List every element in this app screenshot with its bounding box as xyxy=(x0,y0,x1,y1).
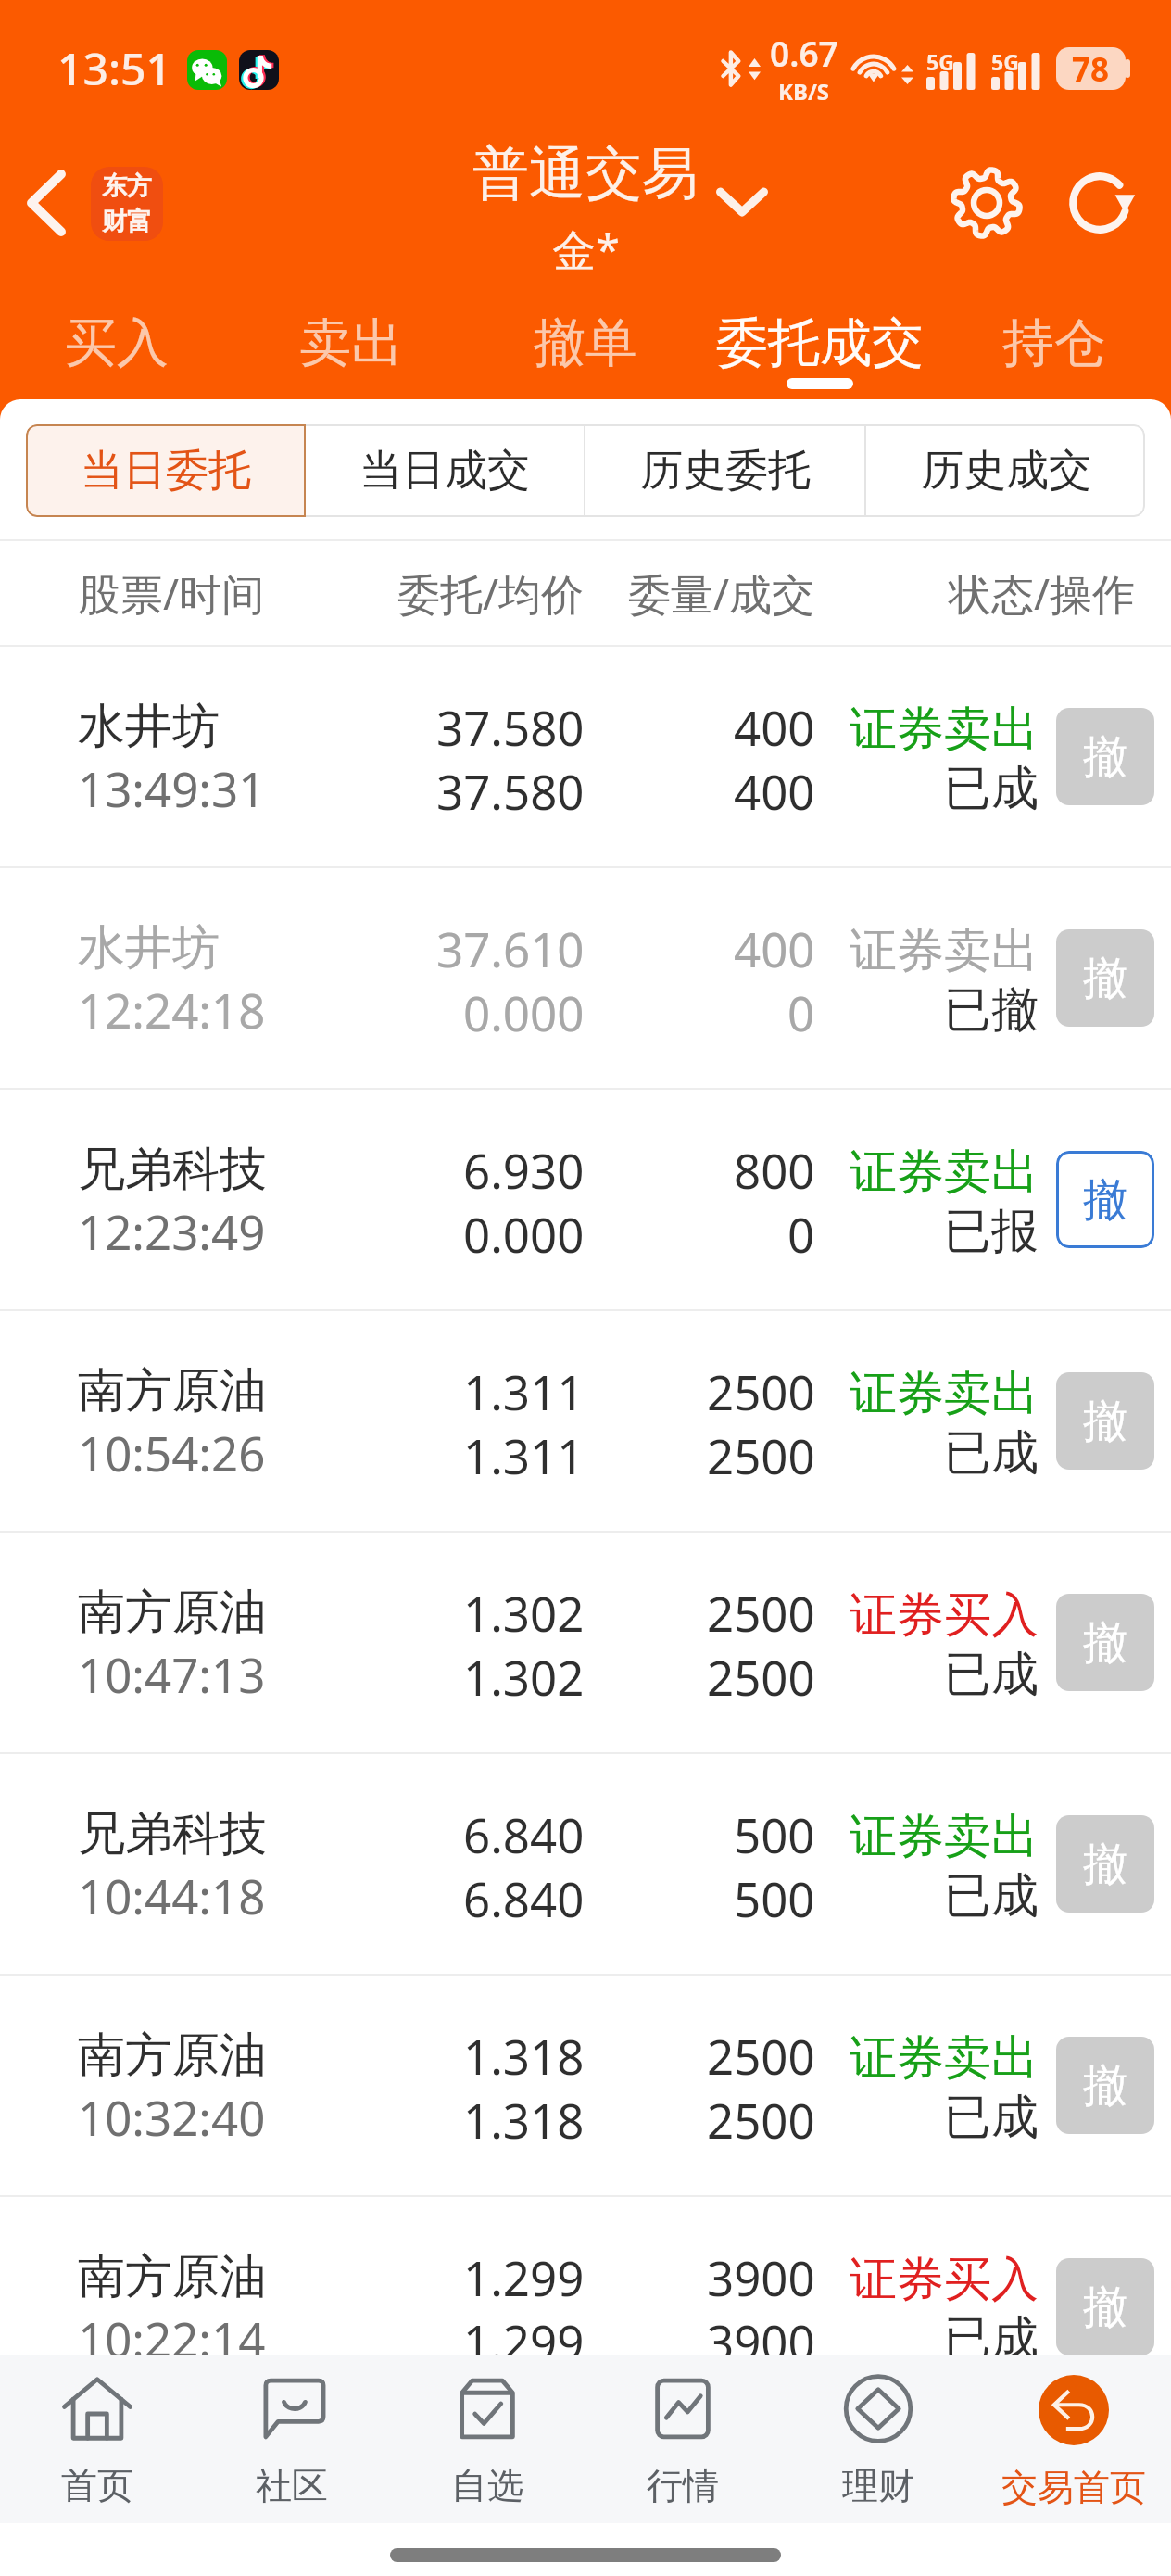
button[interactable]: 兄弟科技 xyxy=(0,1090,1171,1309)
button[interactable]: 历史成交 xyxy=(866,424,1145,517)
button[interactable]: East Money home xyxy=(91,167,163,241)
staticText: 已成 xyxy=(944,759,1039,818)
button[interactable]: 委托成交 xyxy=(702,297,937,399)
staticText: 历史成交 xyxy=(921,444,1091,498)
button[interactable]: 撤 xyxy=(1056,1815,1154,1913)
button[interactable]: 南方原油 xyxy=(0,1976,1171,2195)
staticText: KB/S xyxy=(778,76,830,107)
staticText: 持仓 xyxy=(1002,310,1106,376)
staticText: 证券卖出 xyxy=(850,2028,1039,2088)
staticText: 撤 xyxy=(1083,2058,1127,2114)
staticText: 撤单 xyxy=(534,310,637,376)
staticText: 自选 xyxy=(451,2463,523,2508)
staticText: 5G xyxy=(991,47,1019,76)
staticText: 行情 xyxy=(647,2463,719,2508)
staticText: 10:54:26 xyxy=(78,1421,266,1484)
button[interactable]: 撤 xyxy=(1056,2258,1154,2355)
staticText: 2500 xyxy=(707,1581,815,1645)
staticText: 水井坊 xyxy=(78,918,220,978)
staticText: 历史委托 xyxy=(640,444,811,498)
button[interactable]: 历史委托 xyxy=(585,424,864,517)
staticText: 12:24:18 xyxy=(78,978,266,1042)
staticText: 兄弟科技 xyxy=(78,1804,267,1863)
button[interactable]: Settings xyxy=(942,158,1031,247)
staticText: 0.000 xyxy=(463,1202,585,1266)
staticText: 撤 xyxy=(1083,2279,1127,2335)
button[interactable]: 撤 xyxy=(1056,929,1154,1027)
staticText: 撤 xyxy=(1083,1394,1127,1449)
button[interactable]: 当日委托 xyxy=(26,424,304,517)
staticText: 1.318 xyxy=(463,2024,585,2088)
staticText: 5G xyxy=(926,47,954,76)
button[interactable]: 当日委托 xyxy=(26,424,306,517)
staticText: 东方 xyxy=(102,170,152,202)
button[interactable]: 南方原油 xyxy=(0,1533,1171,1752)
staticText: 400 xyxy=(734,695,815,759)
button[interactable]: 南方原油 xyxy=(0,2197,1171,2355)
staticText: 撤 xyxy=(1083,1172,1127,1228)
staticText: 1.318 xyxy=(463,2088,585,2152)
staticText: 1.311 xyxy=(463,1423,585,1487)
button[interactable]: 买入 xyxy=(0,297,233,399)
staticText: 37.610 xyxy=(436,916,585,980)
button[interactable]: 撤 xyxy=(1056,2037,1154,2134)
staticText: 0 xyxy=(787,1202,815,1266)
button[interactable]: 撤 xyxy=(1056,1594,1154,1691)
button[interactable]: 普通交易 xyxy=(472,138,699,279)
button[interactable]: 撤 xyxy=(1056,1372,1154,1470)
button[interactable]: 撤 xyxy=(1056,1151,1154,1248)
staticText: 1.299 xyxy=(463,2245,585,2309)
button[interactable]: 首页 xyxy=(0,2355,195,2523)
staticText: 撤 xyxy=(1083,1837,1127,1892)
button[interactable]: 撤单 xyxy=(468,297,702,399)
staticText: 普通交易 xyxy=(472,138,699,209)
button[interactable]: Back xyxy=(7,164,85,242)
staticText: 12:23:49 xyxy=(78,1199,266,1263)
staticText: 6.840 xyxy=(463,1866,585,1930)
staticText: 500 xyxy=(734,1802,815,1866)
staticText: 证券卖出 xyxy=(850,1807,1039,1866)
staticText: 78 xyxy=(1072,47,1110,90)
staticText: 3900 xyxy=(707,2309,815,2355)
staticText: 撤 xyxy=(1083,951,1127,1006)
staticText: 3900 xyxy=(707,2245,815,2309)
button[interactable]: 水井坊 xyxy=(0,647,1171,866)
button[interactable]: 水井坊 xyxy=(0,868,1171,1088)
staticText: 南方原油 xyxy=(78,2247,267,2306)
button[interactable]: 兄弟科技 xyxy=(0,1754,1171,1974)
staticText: 证券买入 xyxy=(850,1585,1039,1645)
staticText: 400 xyxy=(734,916,815,980)
staticText: 已成 xyxy=(944,1423,1039,1483)
staticText: 理财 xyxy=(842,2463,914,2508)
staticText: 13:49:31 xyxy=(78,756,266,820)
button[interactable]: 当日成交 xyxy=(306,424,584,517)
button[interactable]: 交易首页 xyxy=(976,2355,1171,2523)
staticText: 500 xyxy=(734,1866,815,1930)
button[interactable]: 南方原油 xyxy=(0,1311,1171,1531)
staticText: 财富 xyxy=(102,206,152,237)
staticText: 证券卖出 xyxy=(850,1143,1039,1202)
staticText: 金* xyxy=(552,220,620,279)
staticText: 已成 xyxy=(944,1866,1039,1926)
staticText: 2500 xyxy=(707,1423,815,1487)
button[interactable]: 理财 xyxy=(780,2355,976,2523)
staticText: 10:47:13 xyxy=(78,1642,266,1706)
staticText: 证券卖出 xyxy=(850,1364,1039,1423)
staticText: 兄弟科技 xyxy=(78,1140,267,1199)
staticText: 37.580 xyxy=(436,759,585,823)
staticText: 0 xyxy=(787,980,815,1044)
button[interactable]: 社区 xyxy=(195,2355,389,2523)
staticText: 6.930 xyxy=(463,1138,585,1202)
staticText: 2500 xyxy=(707,1645,815,1709)
staticText: 水井坊 xyxy=(78,697,220,756)
button[interactable]: 撤 xyxy=(1056,708,1154,805)
staticText: 状态/操作 xyxy=(949,564,1136,623)
staticText: 1.302 xyxy=(463,1645,585,1709)
button[interactable]: Refresh xyxy=(1059,162,1140,244)
staticText: 证券买入 xyxy=(850,2250,1039,2309)
button[interactable]: 行情 xyxy=(585,2355,780,2523)
button[interactable]: 持仓 xyxy=(937,297,1171,399)
staticText: 委托成交 xyxy=(716,310,924,376)
button[interactable]: 自选 xyxy=(389,2355,585,2523)
button[interactable]: 卖出 xyxy=(233,297,468,399)
